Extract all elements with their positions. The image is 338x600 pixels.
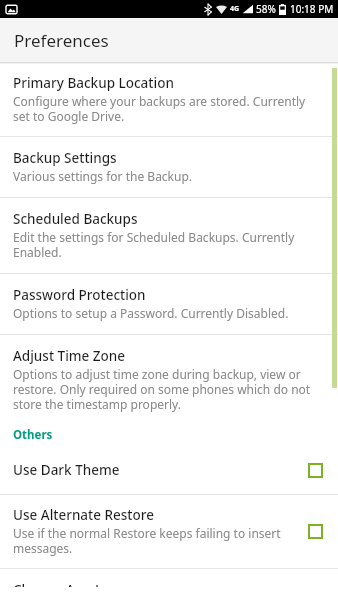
staticText: Preferences [14,29,109,52]
button[interactable]: Primary Backup Location [0,64,338,136]
staticText: 10:18 PM [290,2,334,16]
button[interactable]: Use Dark Theme [0,446,338,494]
staticText: Options to setup a Password. Currently D… [13,305,289,321]
staticText: 4G [230,4,240,14]
staticText: 58% [256,2,276,16]
button[interactable]: Adjust Time Zone [0,335,338,424]
staticText: Edit the settings for Scheduled Backups.… [13,229,322,260]
staticText: Scheduled Backups [13,210,138,228]
button[interactable]: Password Protection [0,274,338,334]
staticText: Password Protection [13,286,146,304]
staticText: Options to adjust time zone during backu… [13,366,322,412]
staticText: Backup Settings [13,149,117,167]
button[interactable]: Scheduled Backups [0,198,338,273]
button[interactable]: Unchecked [302,518,328,544]
staticText: Use Dark Theme [13,461,120,479]
button[interactable]: Use Alternate Restore [0,495,338,568]
staticText: Change App Language [13,581,160,587]
staticText: Adjust Time Zone [13,347,126,365]
button[interactable]: Backup Settings [0,137,338,197]
staticText: Others [13,427,53,443]
staticText: Use Alternate Restore [13,506,154,524]
button[interactable]: Unchecked [302,457,328,483]
staticText: Use if the normal Restore keeps failing … [13,525,302,556]
staticText: Various settings for the Backup. [13,168,193,184]
staticText: Primary Backup Location [13,74,174,92]
button[interactable]: Change App Language [0,569,338,600]
staticText: Configure where your backups are stored.… [13,93,322,124]
